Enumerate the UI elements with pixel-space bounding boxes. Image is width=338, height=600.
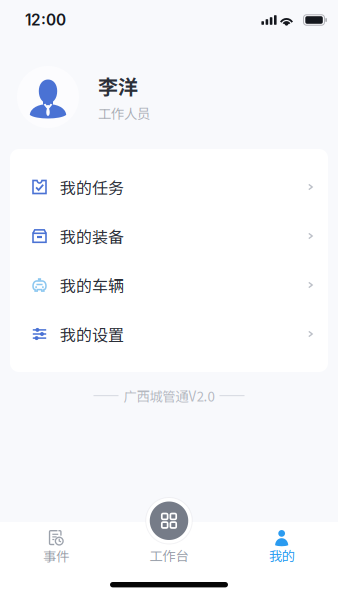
staticText: 12:00	[25, 11, 66, 29]
staticText: 我的车辆	[60, 273, 124, 297]
button[interactable]: 我的	[225, 522, 338, 579]
staticText: 李洋	[98, 71, 138, 100]
button[interactable]: 我的设置	[10, 309, 328, 358]
button[interactable]: 我的车辆	[10, 260, 328, 309]
button[interactable]: 事件	[0, 522, 113, 579]
staticText: 我的	[269, 545, 295, 565]
button[interactable]: 我的任务	[10, 162, 328, 211]
staticText: 我的设置	[60, 322, 124, 346]
staticText: 工作人员	[98, 103, 150, 123]
staticText: 我的任务	[60, 175, 124, 199]
staticText: 广西城管通V2.0	[123, 386, 214, 405]
staticText: 事件	[43, 546, 69, 565]
staticText: 工作台	[149, 545, 188, 565]
button[interactable]: 工作台	[113, 522, 225, 579]
button[interactable]: 工作台	[146, 497, 192, 544]
staticText: 我的装备	[60, 224, 124, 248]
button[interactable]: 我的装备	[10, 211, 328, 260]
